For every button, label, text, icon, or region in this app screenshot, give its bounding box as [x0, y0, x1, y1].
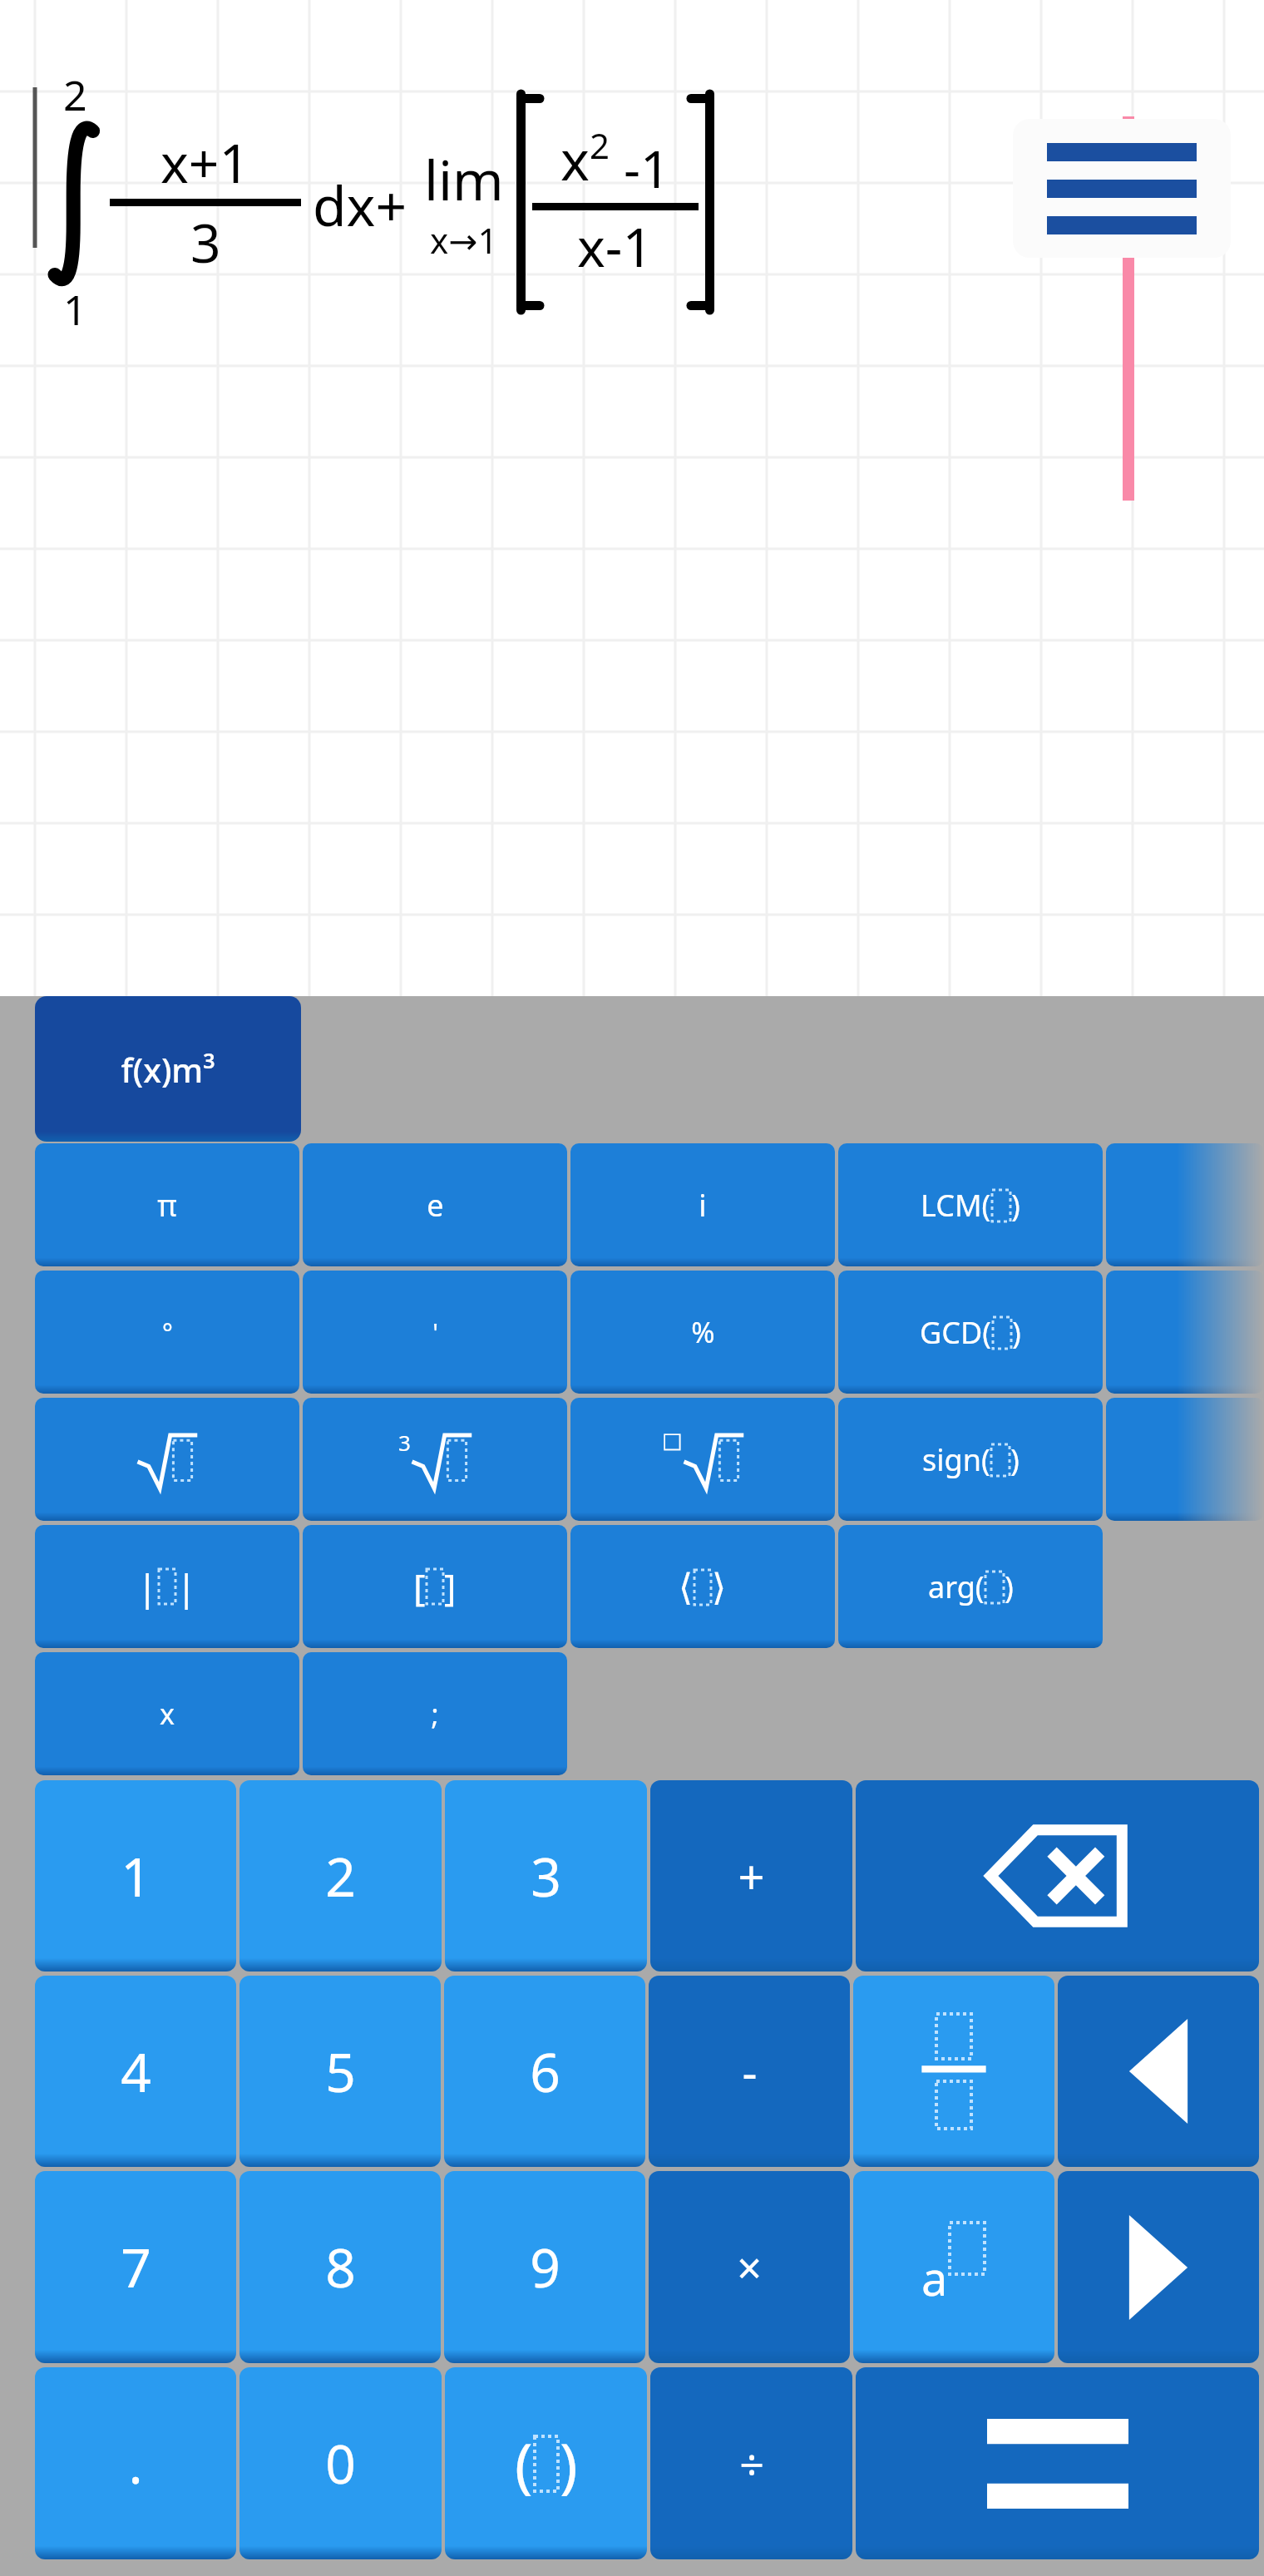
- staticText: ⟨: [679, 1566, 694, 1608]
- staticText: -1: [610, 133, 670, 203]
- button[interactable]: Move left: [1058, 1976, 1259, 2167]
- staticText: +: [738, 1844, 765, 1907]
- staticText: π: [157, 1185, 177, 1226]
- staticText: 3: [190, 206, 221, 279]
- button[interactable]: Fraction: [853, 1976, 1054, 2167]
- button[interactable]: 2: [239, 1780, 442, 1971]
- button[interactable]: °: [35, 1271, 299, 1394]
- button[interactable]: 5: [239, 1976, 441, 2167]
- staticText: ): [1012, 1312, 1021, 1353]
- button[interactable]: x: [35, 1652, 299, 1775]
- staticText: ]: [444, 1562, 457, 1611]
- staticText: arg(: [928, 1567, 985, 1607]
- staticText: |: [176, 1562, 197, 1611]
- staticText: 2: [590, 121, 610, 169]
- staticText: ;: [431, 1695, 439, 1733]
- button[interactable]: sign(: [838, 1398, 1103, 1521]
- staticText: 2: [325, 1840, 356, 1912]
- button[interactable]: [1106, 1271, 1264, 1394]
- staticText: 8: [325, 2231, 356, 2303]
- button[interactable]: □: [570, 1398, 835, 1521]
- button[interactable]: Menu: [1013, 119, 1231, 258]
- button[interactable]: Multiply: [649, 2171, 850, 2363]
- staticText: x-1: [577, 210, 654, 283]
- staticText: f(x)m³: [121, 1047, 215, 1092]
- staticText: (: [515, 2423, 533, 2504]
- staticText: 1: [63, 281, 87, 338]
- button[interactable]: ;: [303, 1652, 567, 1775]
- button[interactable]: [1106, 1398, 1264, 1521]
- button[interactable]: [35, 1398, 299, 1521]
- button[interactable]: π: [35, 1143, 299, 1266]
- staticText: ): [1005, 1567, 1014, 1607]
- staticText: %: [691, 1313, 715, 1351]
- button[interactable]: 0: [239, 2367, 442, 2559]
- staticText: □: [662, 1428, 683, 1453]
- staticText: 7: [121, 2231, 151, 2303]
- button[interactable]: f(x)m³: [35, 996, 301, 1142]
- staticText: ): [560, 2423, 578, 2504]
- staticText: ): [1010, 1439, 1020, 1480]
- staticText: x: [560, 121, 590, 196]
- staticText: ⟩: [712, 1566, 727, 1608]
- staticText: lim: [424, 141, 504, 216]
- staticText: 2: [63, 67, 87, 123]
- staticText: -: [742, 2040, 758, 2103]
- button[interactable]: Power: [853, 2171, 1054, 2363]
- button[interactable]: [1106, 1143, 1264, 1266]
- staticText: |: [137, 1562, 158, 1611]
- staticText: ): [1011, 1185, 1020, 1226]
- button[interactable]: 3: [303, 1398, 567, 1521]
- staticText: 0: [325, 2427, 356, 2500]
- button[interactable]: Divide: [650, 2367, 852, 2559]
- staticText: 4: [121, 2036, 151, 2108]
- staticText: 5: [325, 2036, 356, 2108]
- staticText: °: [162, 1315, 173, 1350]
- button[interactable]: Parentheses: [445, 2367, 647, 2559]
- button[interactable]: Equals: [856, 2367, 1259, 2559]
- staticText: 3: [398, 1428, 411, 1457]
- button[interactable]: [: [303, 1525, 567, 1648]
- button[interactable]: LCM(: [838, 1143, 1103, 1266]
- staticText: x+1: [160, 126, 250, 199]
- button[interactable]: %: [570, 1271, 835, 1394]
- staticText: x→1: [430, 216, 498, 264]
- button[interactable]: e: [303, 1143, 567, 1266]
- staticText: e: [427, 1185, 444, 1226]
- button[interactable]: |: [35, 1525, 299, 1648]
- button[interactable]: 3: [445, 1780, 647, 1971]
- staticText: x: [160, 1695, 175, 1733]
- staticText: dx+: [313, 167, 407, 242]
- button[interactable]: arg(: [838, 1525, 1103, 1648]
- button[interactable]: 7: [35, 2171, 236, 2363]
- staticText: ×: [737, 2238, 762, 2297]
- staticText: GCD(: [920, 1312, 992, 1353]
- button[interactable]: Plus: [650, 1780, 852, 1971]
- button[interactable]: 1: [35, 1780, 236, 1971]
- button[interactable]: 4: [35, 1976, 236, 2167]
- button[interactable]: GCD(: [838, 1271, 1103, 1394]
- staticText: ': [432, 1315, 438, 1350]
- button[interactable]: ': [303, 1271, 567, 1394]
- button[interactable]: Minus: [649, 1976, 850, 2167]
- button[interactable]: .: [35, 2367, 236, 2559]
- staticText: a: [921, 2246, 948, 2309]
- button[interactable]: 6: [444, 1976, 645, 2167]
- staticText: 6: [530, 2036, 560, 2108]
- staticText: .: [128, 2427, 143, 2500]
- button[interactable]: Backspace: [856, 1780, 1259, 1971]
- button[interactable]: 8: [239, 2171, 441, 2363]
- staticText: i: [699, 1185, 707, 1226]
- staticText: 3: [531, 1840, 561, 1912]
- staticText: sign(: [922, 1439, 990, 1480]
- button[interactable]: i: [570, 1143, 835, 1266]
- staticText: [: [413, 1562, 426, 1611]
- button[interactable]: 9: [444, 2171, 645, 2363]
- staticText: ÷: [739, 2434, 764, 2493]
- staticText: 9: [530, 2231, 560, 2303]
- staticText: LCM(: [921, 1185, 991, 1226]
- button[interactable]: ⟨: [570, 1525, 835, 1648]
- button[interactable]: Move right: [1058, 2171, 1259, 2363]
- staticText: 1: [121, 1840, 151, 1912]
